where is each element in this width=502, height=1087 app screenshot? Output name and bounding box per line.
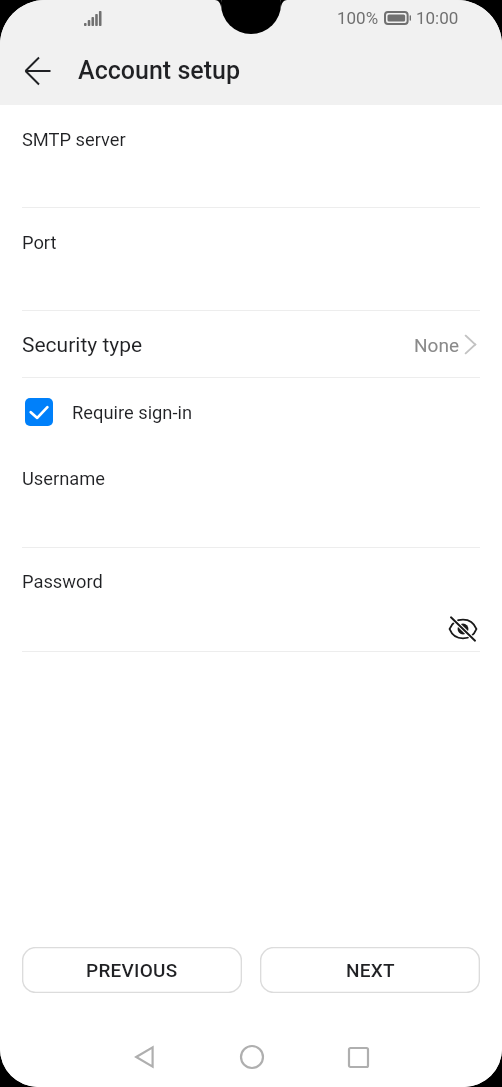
staticText: 10:00 (416, 8, 459, 28)
staticText: Password (22, 571, 103, 592)
button[interactable]: PREVIOUS (22, 947, 242, 993)
staticText: SMTP server (22, 129, 126, 150)
staticText: Security type (22, 333, 143, 358)
staticText: None (414, 334, 459, 356)
button[interactable]: Security type (0, 311, 502, 377)
staticText: Username (22, 468, 106, 489)
staticText: Require sign-in (72, 402, 193, 423)
staticText: 100% (337, 8, 379, 28)
button[interactable]: Recent apps (305, 1027, 412, 1087)
staticText: NEXT (346, 959, 395, 981)
staticText: Port (22, 232, 57, 253)
staticText: PREVIOUS (86, 959, 178, 981)
button[interactable]: Back (14, 47, 62, 95)
button[interactable]: NEXT (260, 947, 480, 993)
staticText: Account setup (78, 56, 241, 85)
button[interactable]: Back (91, 1027, 198, 1087)
button[interactable]: Home (198, 1027, 305, 1087)
button[interactable]: Show password (443, 609, 483, 649)
button[interactable]: Require sign-in (0, 390, 502, 434)
